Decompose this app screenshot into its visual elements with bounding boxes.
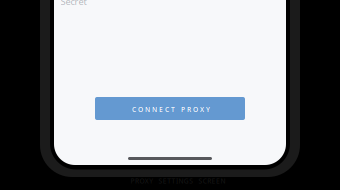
staticText: CONNECT PROXY xyxy=(132,105,210,114)
staticText: PROXY SETTINGS SCREEN xyxy=(131,177,225,185)
button[interactable]: CONNECT PROXY xyxy=(95,97,245,120)
staticText: Secret xyxy=(60,0,86,8)
